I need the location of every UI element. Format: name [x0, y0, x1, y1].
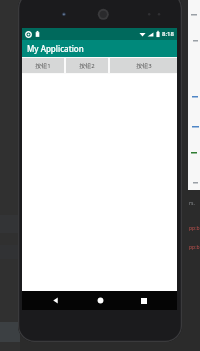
staticText: 按钮3 [136, 62, 152, 70]
staticText: pp:b [189, 225, 200, 232]
staticText: 8:18 [162, 30, 174, 38]
button[interactable]: 按钮3 [110, 58, 177, 73]
staticText: rs. [189, 200, 195, 207]
staticText: 按钮2 [79, 62, 95, 70]
staticText: My Application [27, 43, 84, 54]
button[interactable]: Recent apps [132, 291, 156, 310]
button[interactable]: Back [43, 291, 67, 310]
button[interactable]: 按钮2 [66, 58, 108, 73]
staticText: pp:b [189, 244, 200, 251]
button[interactable]: Home [88, 291, 112, 310]
staticText: 按钮1 [35, 62, 51, 70]
button[interactable]: 按钮1 [22, 58, 64, 73]
